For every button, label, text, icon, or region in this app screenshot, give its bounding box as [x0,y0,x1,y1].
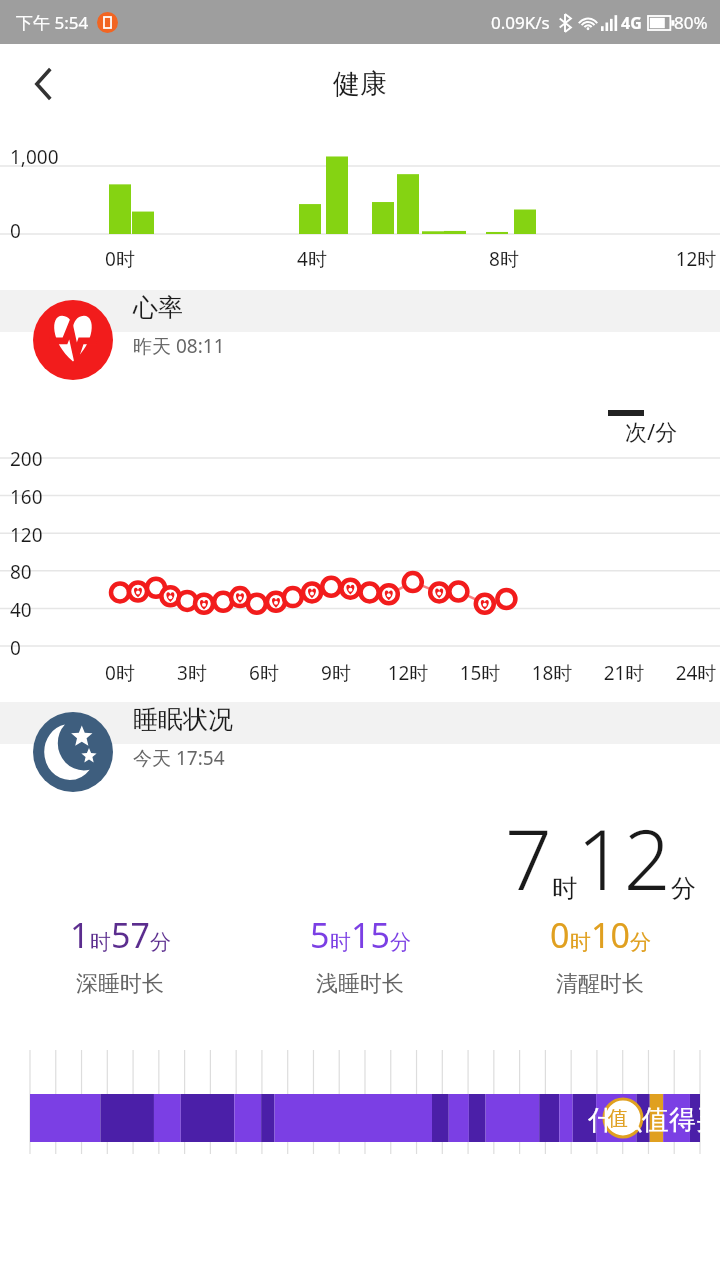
staticText: 睡眠状况 [133,704,233,735]
staticText: 浅睡时长 [316,970,404,998]
staticText: 分 [390,929,411,955]
button[interactable]: 返回 [20,60,68,108]
staticText: 12时 [372,660,444,686]
staticText: 4G [621,12,642,34]
button[interactable]: 睡眠状况 [0,702,720,802]
staticText: 时 [552,873,577,904]
staticText: 12 [577,802,671,912]
staticText: 0 [10,218,21,244]
staticText: 10 [591,912,630,958]
staticText: 200 [10,446,43,472]
staticText: 0 [10,635,21,661]
staticText: 80% [674,11,708,34]
staticText: 5 [310,912,330,958]
staticText: 24时 [660,660,720,686]
staticText: 15时 [444,660,516,686]
staticText: 时 [90,929,111,955]
staticText: 12时 [648,246,720,272]
staticText: 80 [10,559,32,585]
staticText: 4时 [264,246,360,272]
staticText: 160 [10,484,43,510]
staticText: 1 [70,912,90,958]
staticText: 时 [330,929,351,955]
staticText: 分 [630,929,651,955]
staticText: 值 [608,1106,628,1131]
staticText: 深睡时长 [76,970,164,998]
staticText: 7 [505,802,552,912]
staticText: 分 [150,929,171,955]
staticText: 昨天 08:11 [133,333,225,359]
button[interactable]: 1 [0,912,240,998]
staticText: 0时 [84,660,156,686]
staticText: 什么值得买 [588,1103,720,1137]
staticText: 下午 5:54 [16,11,89,34]
staticText: 今天 17:54 [133,745,225,771]
staticText: 心率 [133,292,183,323]
staticText: 清醒时长 [556,970,644,998]
staticText: 15 [351,912,390,958]
staticText: 1,000 [10,144,59,170]
staticText: 57 [111,912,150,958]
button[interactable]: 0 [480,912,720,998]
button[interactable]: 心率 [0,290,720,390]
staticText: 0时 [72,246,168,272]
staticText: 0.09K/s [491,11,550,34]
staticText: 时 [570,929,591,955]
staticText: 8时 [456,246,552,272]
staticText: 健康 [333,67,387,101]
staticText: 分 [671,873,696,904]
staticText: 9时 [300,660,372,686]
staticText: 6时 [228,660,300,686]
staticText: 0 [550,912,570,958]
staticText: 3时 [156,660,228,686]
staticText: 120 [10,522,43,548]
staticText: 21时 [588,660,660,686]
staticText: 40 [10,597,32,623]
staticText: 18时 [516,660,588,686]
button[interactable]: 5 [240,912,480,998]
staticText: 次/分 [625,416,678,446]
